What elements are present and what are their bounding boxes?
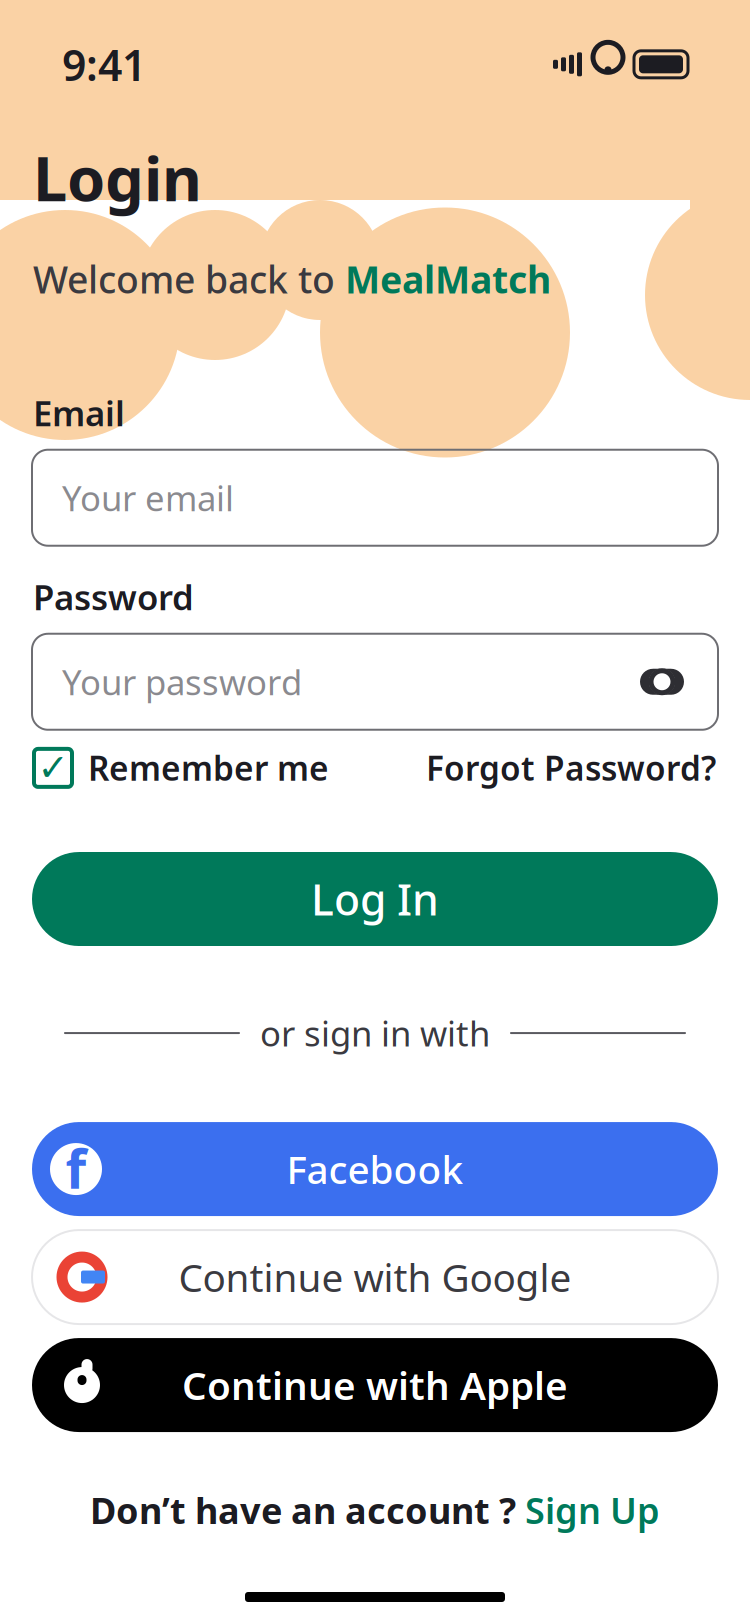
- staticText: ✓: [37, 747, 68, 789]
- staticText: Email: [33, 390, 125, 436]
- staticText: Remember me: [88, 746, 329, 790]
- button[interactable]: Show password: [636, 662, 688, 702]
- staticText: Don’t have an account ?: [90, 1486, 525, 1534]
- button[interactable]: ✓: [34, 746, 329, 790]
- staticText: Sign Up: [525, 1486, 660, 1534]
- staticText: MealMatch: [345, 254, 551, 304]
- button[interactable]: Don’t have an account ?: [90, 1486, 660, 1534]
- staticText: or sign in with: [260, 1010, 490, 1056]
- staticText: Log In: [311, 871, 439, 927]
- button[interactable]: Facebook: [32, 1122, 718, 1216]
- staticText: Continue with Google: [178, 1251, 571, 1303]
- staticText: f: [65, 1133, 86, 1203]
- staticText: Forgot Password?: [426, 746, 716, 790]
- button[interactable]: Continue with Google: [32, 1230, 718, 1324]
- staticText: Welcome back to: [33, 254, 345, 304]
- button[interactable]: Forgot Password?: [426, 746, 716, 790]
- staticText: Login: [33, 137, 202, 218]
- staticText: Your email: [62, 475, 234, 521]
- staticText: Password: [33, 574, 194, 620]
- staticText: Facebook: [286, 1143, 463, 1195]
- button[interactable]: Continue with Apple: [32, 1338, 718, 1432]
- button[interactable]: Log In: [32, 852, 718, 946]
- staticText: Continue with Apple: [182, 1359, 568, 1411]
- staticText: Your password: [62, 659, 302, 705]
- staticText: 9:41: [62, 36, 146, 93]
